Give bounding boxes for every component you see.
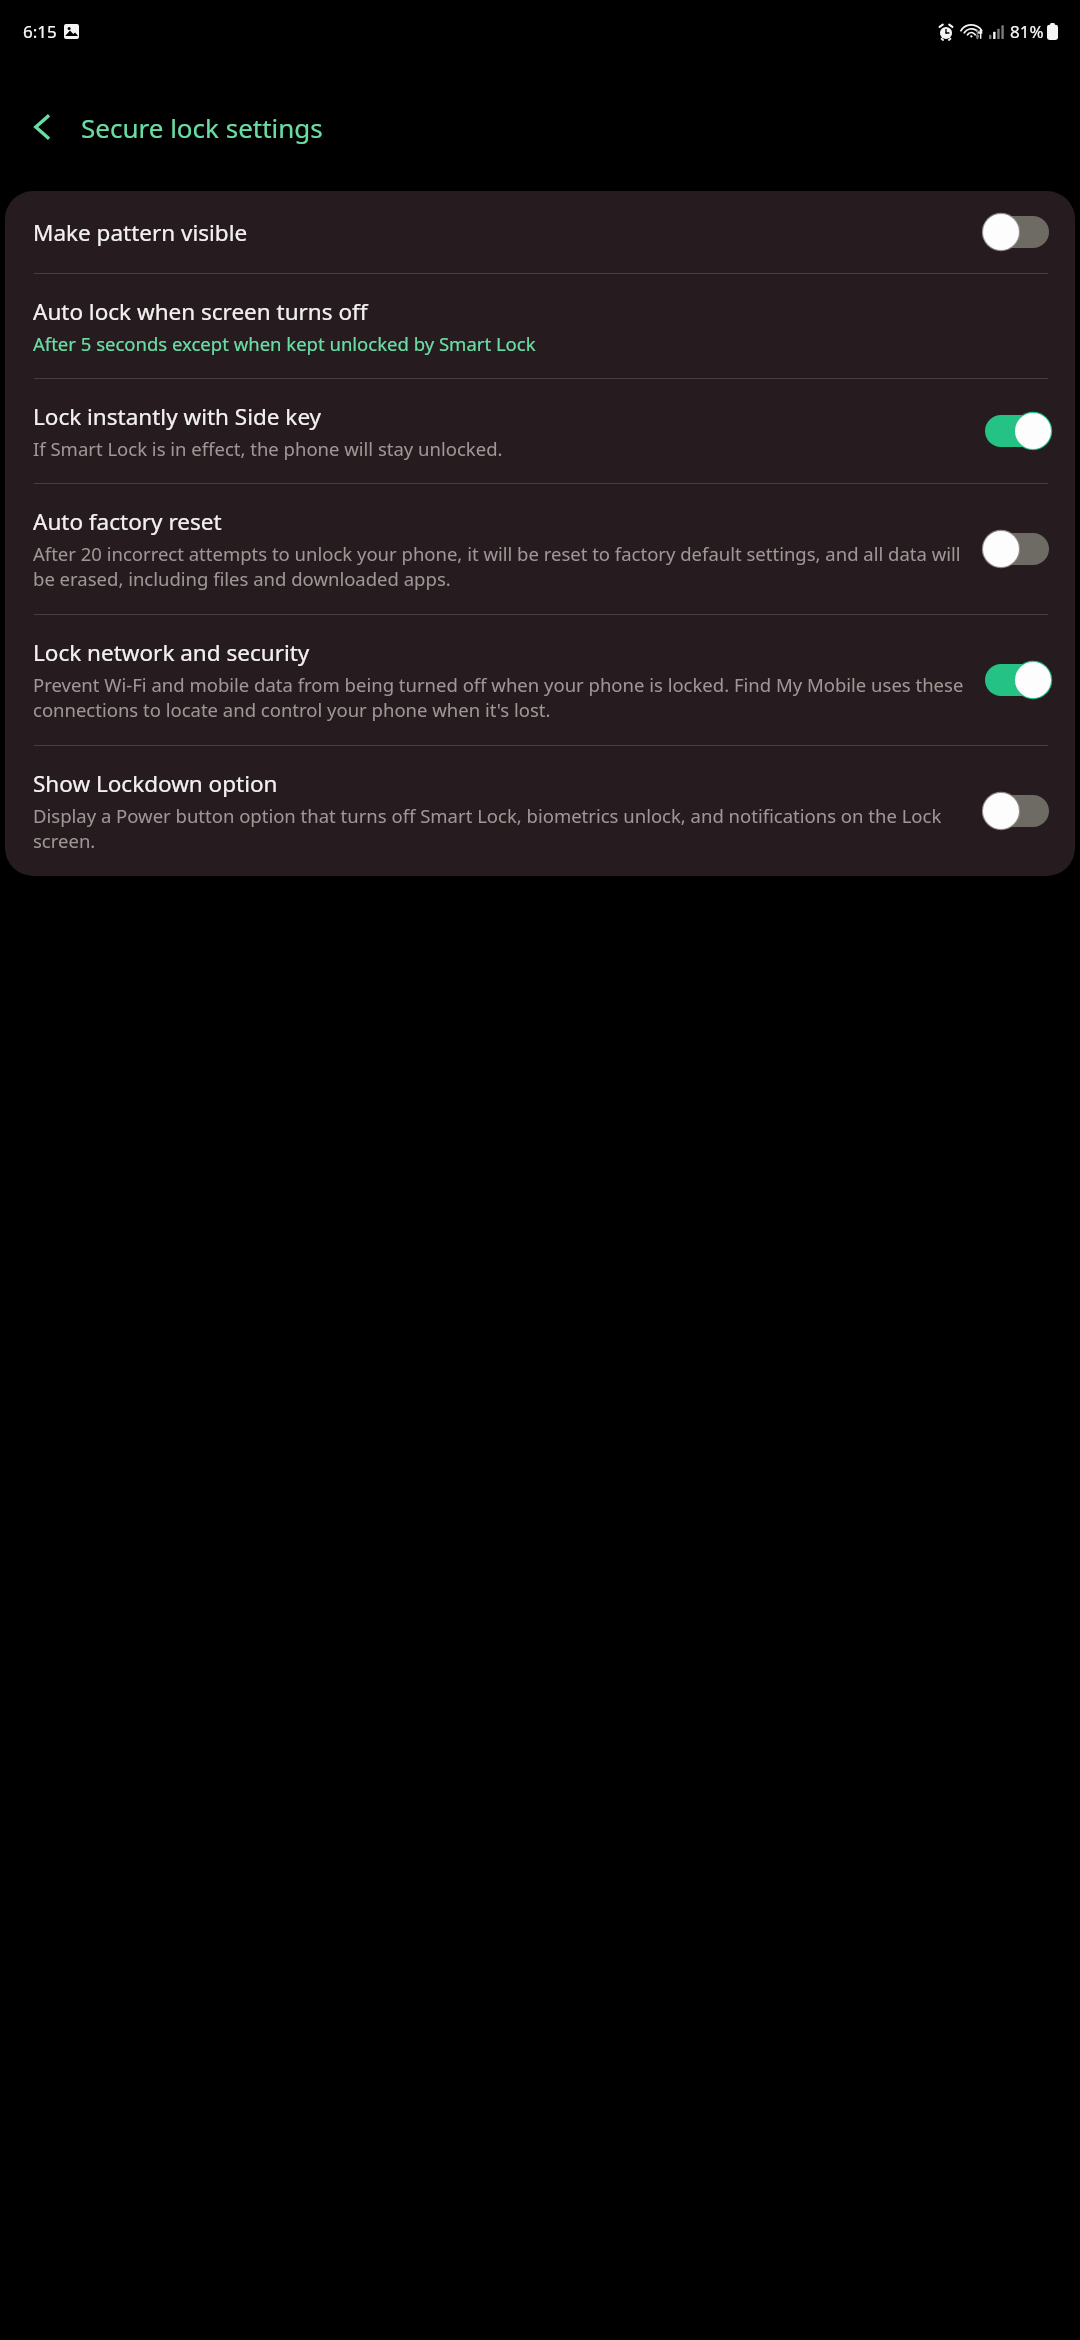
button[interactable]: Toggle on xyxy=(984,412,1050,450)
button[interactable]: Show Lockdown option xyxy=(5,746,1075,876)
button[interactable]: Lock network and security xyxy=(5,615,1075,745)
staticText: Prevent Wi-Fi and mobile data from being… xyxy=(33,672,972,723)
staticText: 6:15 xyxy=(23,20,57,43)
staticText: After 5 seconds except when kept unlocke… xyxy=(33,331,536,356)
button[interactable]: Lock instantly with Side key xyxy=(5,379,1075,483)
button[interactable]: Auto factory reset xyxy=(5,484,1075,614)
button[interactable]: Toggle off xyxy=(984,792,1050,830)
staticText: Lock network and security xyxy=(33,637,310,668)
button[interactable]: Back xyxy=(14,98,72,156)
staticText: Make pattern visible xyxy=(33,217,248,248)
staticText: Show Lockdown option xyxy=(33,768,278,799)
button[interactable]: Toggle off xyxy=(984,213,1050,251)
staticText: 81% xyxy=(1010,20,1044,43)
button[interactable]: Toggle on xyxy=(984,661,1050,699)
button[interactable]: Toggle off xyxy=(984,530,1050,568)
staticText: Secure lock settings xyxy=(81,110,323,145)
staticText: If Smart Lock is in effect, the phone wi… xyxy=(33,436,503,461)
staticText: After 20 incorrect attempts to unlock yo… xyxy=(33,541,972,592)
button[interactable]: Make pattern visible xyxy=(5,191,1075,273)
staticText: Auto factory reset xyxy=(33,506,222,537)
staticText: Display a Power button option that turns… xyxy=(33,803,972,854)
staticText: Lock instantly with Side key xyxy=(33,401,322,432)
staticText: Auto lock when screen turns off xyxy=(33,296,368,327)
button[interactable]: Auto lock when screen turns off xyxy=(5,274,1075,378)
